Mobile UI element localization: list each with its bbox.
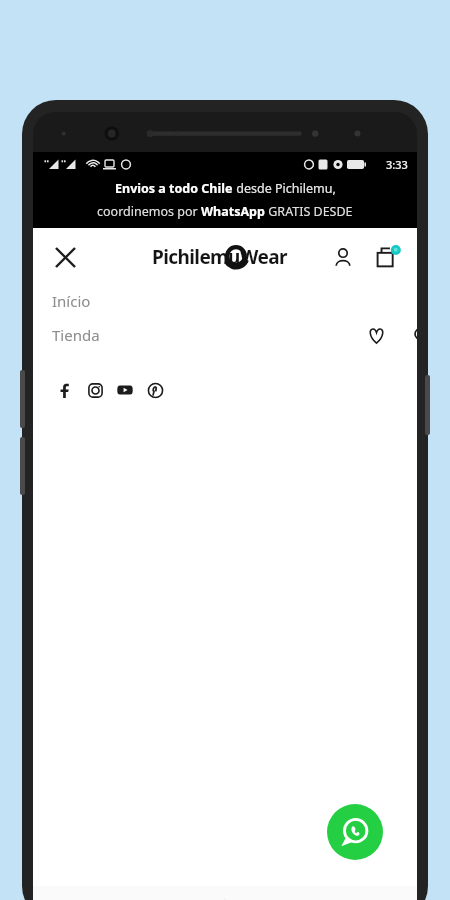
- button[interactable]: Pinterest: [141, 376, 169, 404]
- button[interactable]: Pichilemu: [152, 244, 287, 270]
- button[interactable]: YouTube: [111, 376, 139, 404]
- staticText: coordinemos por: [97, 203, 201, 220]
- staticText: Início: [52, 291, 91, 311]
- staticText: WhatsApp: [201, 203, 265, 220]
- button[interactable]: Search: [404, 318, 417, 352]
- staticText: desde Pichilemu,: [233, 180, 336, 197]
- button[interactable]: Account: [323, 237, 363, 277]
- button[interactable]: Instagram: [81, 376, 109, 404]
- button[interactable]: Chat on WhatsApp: [327, 804, 383, 860]
- staticText: 3:33: [386, 157, 408, 172]
- button[interactable]: Início: [33, 284, 417, 318]
- staticText: Wear: [240, 244, 287, 270]
- staticText: Tienda: [52, 325, 100, 345]
- button[interactable]: Tienda: [33, 318, 417, 352]
- staticText: Pichilemu: [152, 244, 240, 270]
- staticText: Envios a todo Chile: [115, 180, 233, 197]
- staticText: GRATIS DESDE: [265, 203, 353, 220]
- button[interactable]: Facebook: [51, 376, 79, 404]
- button[interactable]: Shopping bag: [367, 236, 409, 278]
- button[interactable]: Close menu: [43, 235, 87, 279]
- button[interactable]: Wishlist: [359, 318, 393, 352]
